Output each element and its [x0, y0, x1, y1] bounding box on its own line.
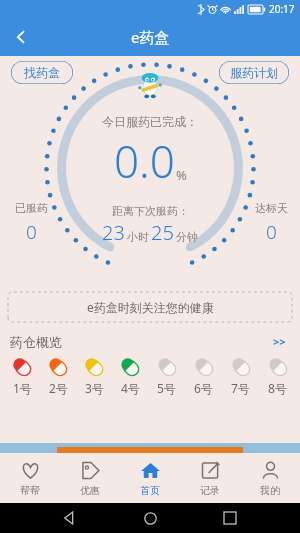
staticText: 6号: [194, 380, 213, 396]
staticText: %: [176, 166, 187, 184]
button[interactable]: 7号: [222, 355, 259, 396]
button[interactable]: 5号: [148, 355, 185, 396]
staticText: 20:17: [269, 2, 295, 16]
staticText: 4号: [121, 380, 140, 396]
button[interactable]: 8号: [259, 355, 296, 396]
button[interactable]: 我的: [240, 453, 300, 503]
staticText: >>: [273, 334, 286, 349]
button[interactable]: 1号: [4, 355, 40, 396]
button[interactable]: 首页: [120, 453, 180, 503]
button[interactable]: More: [269, 332, 290, 351]
staticText: 3号: [85, 380, 104, 396]
staticText: e药盒时刻关注您的健康: [87, 299, 214, 315]
staticText: 0.0: [114, 131, 175, 191]
staticText: 5号: [157, 380, 176, 396]
button[interactable]: 4号: [112, 355, 148, 396]
button[interactable]: Back: [55, 503, 85, 533]
button[interactable]: 服药计划: [218, 60, 290, 85]
button[interactable]: e药盒时刻关注您的健康: [8, 292, 292, 322]
staticText: 分钟: [176, 230, 198, 244]
staticText: 0: [266, 219, 277, 245]
staticText: 今日服药已完成：: [102, 114, 198, 129]
button[interactable]: 找药盒: [10, 60, 74, 85]
staticText: 23: [102, 219, 125, 246]
button[interactable]: 优惠: [60, 453, 120, 503]
button[interactable]: 帮帮: [0, 453, 60, 503]
staticText: 25: [151, 219, 174, 246]
staticText: 达标天: [255, 201, 288, 215]
staticText: 药仓概览: [10, 334, 62, 350]
staticText: 服药计划: [230, 65, 278, 80]
button[interactable]: Home: [135, 503, 165, 533]
staticText: 首页: [140, 484, 160, 497]
staticText: 0: [26, 219, 37, 245]
staticText: 我的: [260, 484, 280, 497]
staticText: 优惠: [80, 484, 100, 497]
staticText: 8号: [268, 380, 287, 396]
staticText: 7号: [231, 380, 250, 396]
staticText: 2号: [49, 380, 68, 396]
button[interactable]: 6号: [185, 355, 222, 396]
staticText: 帮帮: [20, 484, 40, 497]
staticText: 找药盒: [24, 65, 60, 80]
staticText: 记录: [200, 484, 220, 497]
button[interactable]: Back: [0, 18, 42, 56]
button[interactable]: 2号: [40, 355, 76, 396]
button[interactable]: 记录: [180, 453, 240, 503]
staticText: e药盒: [131, 27, 170, 47]
button[interactable]: Recents: [215, 503, 245, 533]
staticText: 1号: [13, 380, 32, 396]
staticText: 小时: [127, 230, 149, 244]
button[interactable]: [0, 443, 300, 453]
staticText: 距离下次服药：: [112, 204, 189, 218]
button[interactable]: 3号: [76, 355, 112, 396]
staticText: 已服药: [15, 201, 48, 215]
